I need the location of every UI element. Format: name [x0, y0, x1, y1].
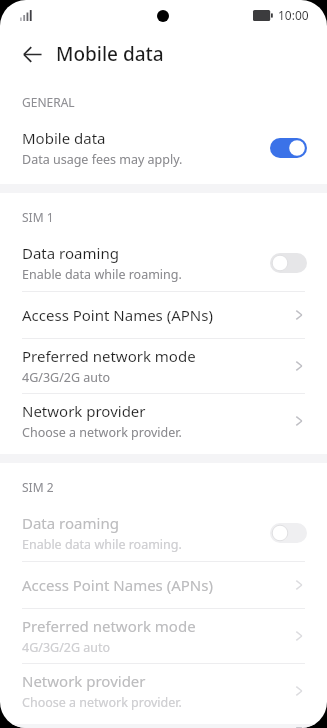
staticText: Access Point Names (APNs)	[22, 305, 213, 325]
button[interactable]: Access Point Names (APNs)	[0, 292, 327, 338]
staticText: Choose a network provider.	[22, 694, 182, 711]
button[interactable]: Network provider	[0, 664, 327, 718]
staticText: 4G/3G/2G auto	[22, 639, 111, 656]
staticText: Data roaming	[22, 513, 119, 533]
staticText: Network provider	[22, 401, 146, 421]
staticText: Enable data while roaming.	[22, 536, 182, 553]
staticText: Mobile data	[56, 41, 164, 67]
staticText: 4G/3G/2G auto	[22, 369, 111, 386]
staticText: SIM 2	[22, 479, 54, 495]
staticText: Choose a network provider.	[22, 424, 182, 441]
staticText: Access Point Names (APNs)	[22, 575, 213, 595]
button[interactable]: Network provider	[0, 394, 327, 448]
button[interactable]: Toggle on	[270, 138, 307, 158]
staticText: SIM 1	[22, 209, 54, 225]
button[interactable]: Toggle off	[270, 253, 307, 273]
button[interactable]: Preferred network mode	[0, 609, 327, 663]
staticText: Preferred network mode	[22, 346, 196, 366]
staticText: Preferred network mode	[22, 616, 196, 636]
staticText: GENERAL	[22, 94, 75, 110]
button[interactable]: Access Point Names (APNs)	[0, 562, 327, 608]
staticText: 10:00	[278, 7, 309, 23]
button[interactable]: Preferred network mode	[0, 339, 327, 393]
staticText: Enable data while roaming.	[22, 266, 182, 283]
button[interactable]: Toggle off	[270, 523, 307, 543]
button[interactable]: Data roaming	[0, 505, 327, 561]
button[interactable]: Back	[12, 34, 52, 74]
staticText: Mobile data	[22, 128, 106, 148]
staticText: Network provider	[22, 671, 146, 691]
staticText: Data roaming	[22, 243, 119, 263]
button[interactable]: Data roaming	[0, 235, 327, 291]
staticText: Data usage fees may apply.	[22, 151, 183, 168]
button[interactable]: Mobile data	[0, 120, 327, 176]
